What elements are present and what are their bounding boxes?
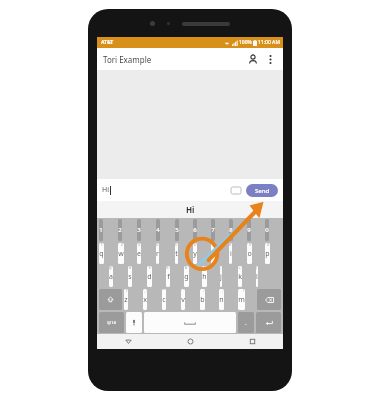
button[interactable]: w <box>118 243 124 264</box>
staticText: . <box>245 319 247 327</box>
button[interactable]: 8 <box>229 219 233 241</box>
staticText: r <box>156 249 159 259</box>
staticText: 1 <box>99 226 103 234</box>
button[interactable]: t <box>175 243 178 264</box>
staticText: 11:00 AM <box>258 39 280 46</box>
button[interactable]: m <box>238 289 245 310</box>
button[interactable]: s <box>128 266 132 287</box>
staticText: 7 <box>211 226 215 234</box>
button[interactable]: a <box>109 266 113 287</box>
button[interactable]: k <box>238 266 242 287</box>
button[interactable]: d <box>147 266 152 287</box>
staticText: b <box>200 295 205 305</box>
staticText: d <box>147 272 152 282</box>
button[interactable]: Send <box>246 184 278 197</box>
staticText: t <box>175 249 178 259</box>
button[interactable]: Attach <box>230 185 242 195</box>
button[interactable]: o <box>247 243 252 264</box>
staticText: 6 <box>194 243 196 247</box>
staticText: AT&T <box>101 39 114 46</box>
button[interactable]: x <box>143 289 147 310</box>
button[interactable]: 3 <box>137 219 141 241</box>
button[interactable]: f <box>166 266 170 287</box>
staticText: i <box>230 249 232 259</box>
button[interactable]: 4 <box>156 219 160 241</box>
staticText: $ <box>149 266 151 270</box>
staticText: @ <box>109 266 112 270</box>
button[interactable]: Back <box>97 334 159 349</box>
staticText: _ <box>144 289 146 293</box>
button[interactable]: 1 <box>99 219 103 241</box>
button[interactable]: More options <box>263 52 277 66</box>
staticText: - <box>220 266 221 270</box>
button[interactable]: u <box>211 243 216 264</box>
button[interactable]: y <box>193 243 197 264</box>
button[interactable]: Space <box>144 312 236 333</box>
staticText: ( <box>256 266 257 270</box>
button[interactable]: 7 <box>211 219 215 241</box>
button[interactable]: Period <box>238 312 254 333</box>
staticText: 2 <box>118 226 122 234</box>
staticText: w <box>118 249 124 259</box>
button[interactable]: c <box>162 289 166 310</box>
staticText: Tori Example <box>103 54 152 65</box>
staticText: 3 <box>137 226 141 234</box>
staticText: 0 <box>265 226 269 234</box>
staticText: a <box>109 272 113 282</box>
button[interactable]: h <box>202 266 207 287</box>
staticText: 1 <box>101 243 103 247</box>
button[interactable]: Recents <box>221 334 283 349</box>
button[interactable]: e <box>137 243 141 264</box>
staticText: ! <box>243 289 244 293</box>
staticText: 100% <box>239 39 252 46</box>
button[interactable]: Home <box>159 334 221 349</box>
button[interactable]: Hi <box>102 185 230 195</box>
button[interactable]: i <box>229 243 232 264</box>
button[interactable]: Enter <box>256 312 281 333</box>
staticText: f <box>167 272 170 282</box>
button[interactable]: Contact details <box>245 51 261 67</box>
button[interactable]: Hi <box>97 201 283 218</box>
staticText: 2 <box>121 243 123 247</box>
button[interactable]: Shift <box>99 289 122 310</box>
button[interactable]: Voice input <box>126 312 142 333</box>
staticText: 5 <box>175 226 179 234</box>
staticText: y <box>193 249 197 259</box>
staticText: 0 <box>267 243 269 247</box>
staticText: ) <box>126 289 127 293</box>
button[interactable]: Backspace <box>257 289 281 310</box>
staticText: 9 <box>247 226 251 234</box>
button[interactable]: z <box>124 289 128 310</box>
button[interactable]: 5 <box>175 219 179 241</box>
button[interactable]: 0 <box>265 219 269 241</box>
button[interactable]: p <box>265 243 270 264</box>
button[interactable]: r <box>156 243 159 264</box>
button[interactable]: Symbols and emoji <box>99 312 124 333</box>
button[interactable]: 2 <box>118 219 122 241</box>
staticText: l <box>256 272 258 282</box>
staticText: x <box>143 295 147 305</box>
button[interactable]: j <box>220 266 222 287</box>
staticText: ; <box>222 289 223 293</box>
staticText: o <box>247 249 252 259</box>
staticText: 8 <box>229 226 233 234</box>
button[interactable]: l <box>256 266 258 287</box>
staticText: h <box>202 272 207 282</box>
staticText: * <box>204 266 206 270</box>
staticText: 4 <box>156 243 158 247</box>
staticText: : <box>203 289 204 293</box>
staticText: j <box>220 272 222 282</box>
button[interactable]: g <box>184 266 189 287</box>
staticText: 3 <box>138 243 140 247</box>
staticText: 7 <box>213 243 215 247</box>
staticText: p <box>265 249 270 259</box>
staticText: 5 <box>175 243 177 247</box>
button[interactable]: b <box>200 289 205 310</box>
button[interactable]: q <box>99 243 104 264</box>
button[interactable]: 9 <box>247 219 251 241</box>
button[interactable]: 6 <box>193 219 197 241</box>
staticText: ☺1# <box>107 320 117 325</box>
button[interactable]: n <box>219 289 224 310</box>
button[interactable]: v <box>181 289 185 310</box>
staticText: 4 <box>156 226 160 234</box>
